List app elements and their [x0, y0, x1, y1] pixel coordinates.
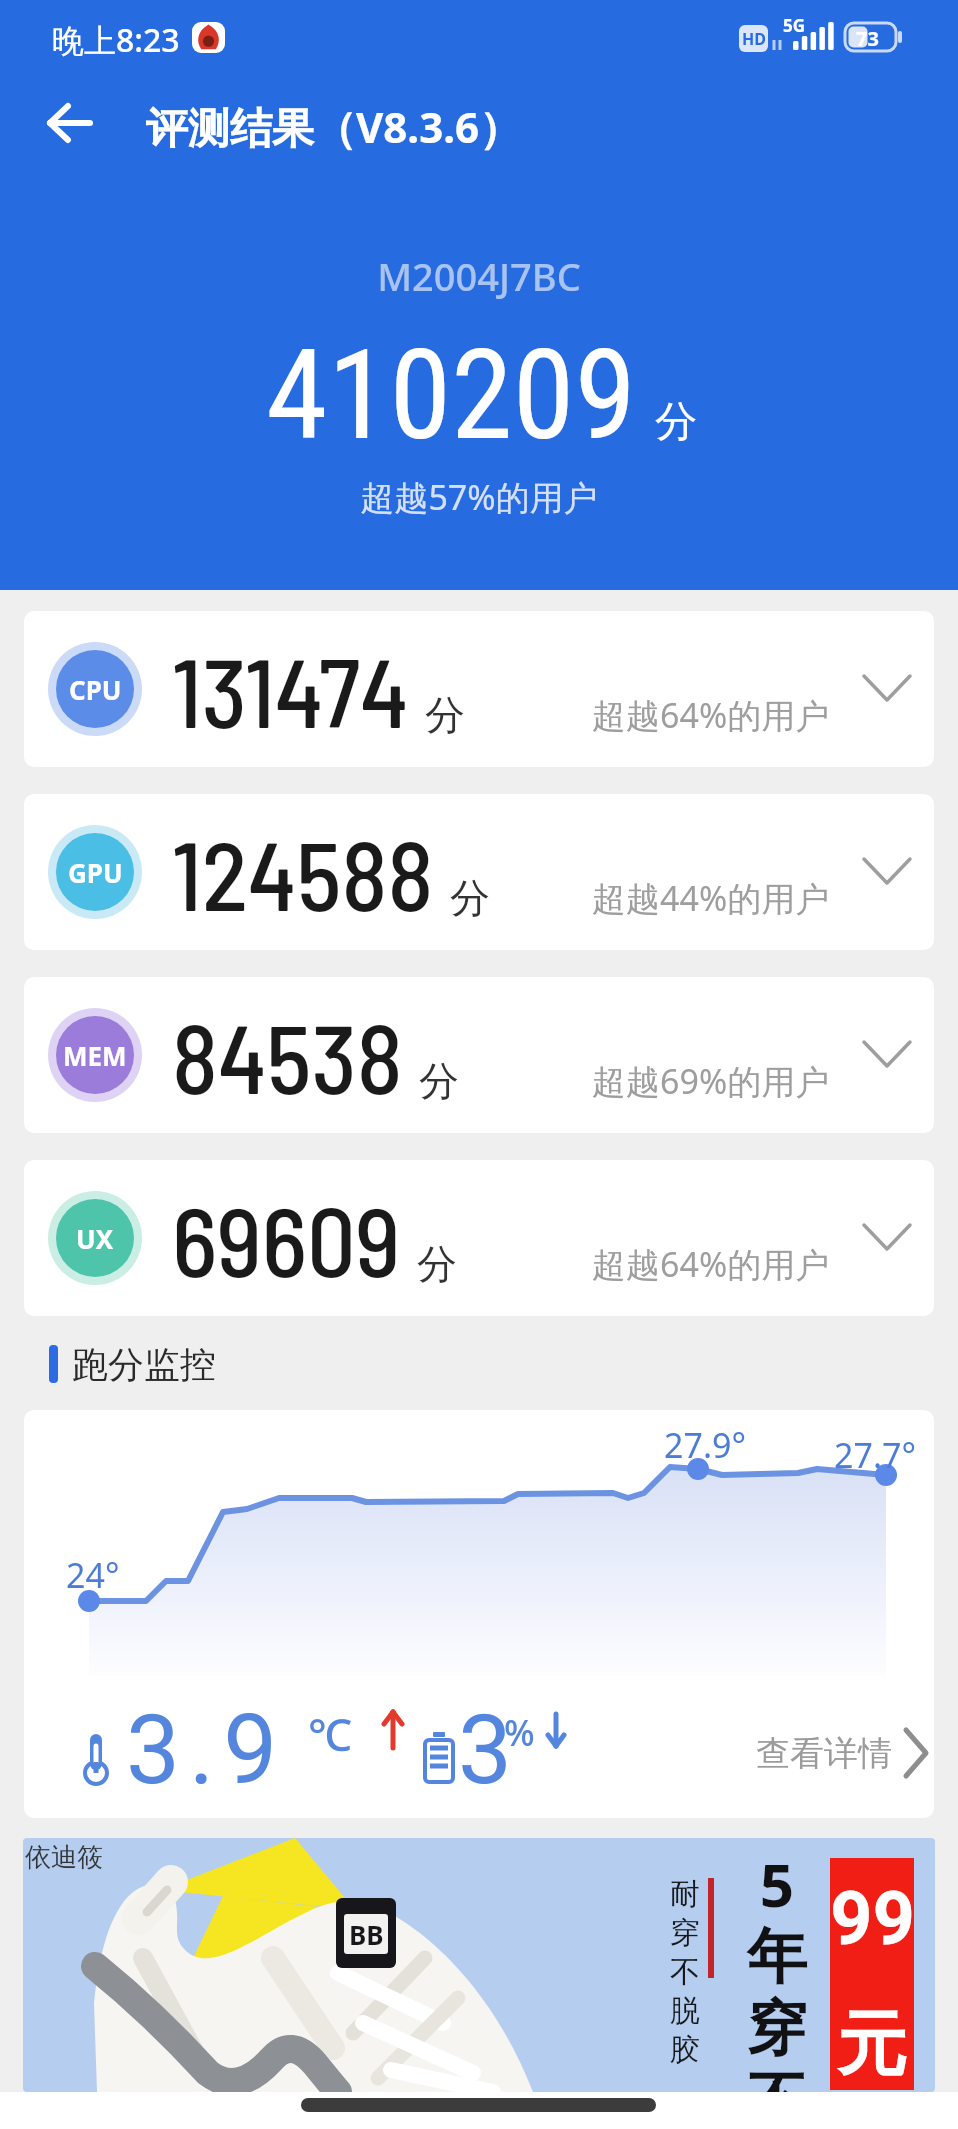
staticText: 73 [856, 25, 879, 52]
staticText: 3 [458, 1694, 512, 1807]
staticText: 超越57%的用户 [0, 474, 958, 520]
staticText: 超越44%的用户 [592, 875, 830, 921]
staticText: UX [76, 1221, 114, 1256]
staticText: HD [742, 28, 766, 50]
staticText: 依迪筱 [25, 1841, 103, 1874]
staticText: 分 [417, 1239, 457, 1289]
staticText: GPU [68, 855, 123, 890]
staticText: ℃ [308, 1704, 352, 1764]
staticText: 分 [419, 1056, 459, 1106]
button[interactable]: 24° [24, 1410, 934, 1818]
staticText: 24° [66, 1552, 120, 1598]
staticText: 99 [830, 1875, 914, 1962]
staticText: MEM [63, 1038, 127, 1073]
staticText: 分 [425, 690, 465, 740]
staticText: BB [349, 1917, 384, 1952]
staticText: 69609 [172, 1181, 401, 1296]
staticText: 410209 [266, 322, 637, 468]
staticText: 元 [830, 2001, 914, 2089]
staticText: 超越64%的用户 [592, 692, 830, 738]
staticText: % [504, 1708, 535, 1757]
button[interactable]: MEM [24, 977, 934, 1133]
staticText: 耐 穿 不 脱 胶 [670, 1875, 700, 2069]
staticText: 5G [783, 14, 806, 37]
staticText: 分 [450, 873, 490, 923]
staticText: M2004J7BC [0, 250, 958, 302]
button[interactable]: 查看详情 [756, 1728, 928, 1778]
staticText: 超越69%的用户 [592, 1058, 830, 1104]
staticText: CPU [69, 672, 122, 707]
staticText: 124588 [172, 815, 434, 930]
button[interactable]: CPU [24, 611, 934, 767]
staticText: 评测结果（V8.3.6） [146, 98, 521, 155]
staticText: 晚上8:23 [52, 18, 180, 62]
button[interactable]: BB [23, 1838, 935, 2092]
staticText: 131474 [172, 632, 409, 747]
staticText: 3.9 [126, 1694, 287, 1807]
staticText: 5 年 穿 不 [745, 1843, 809, 2092]
button[interactable] [30, 92, 110, 154]
button[interactable]: GPU [24, 794, 934, 950]
staticText: 27.9° [664, 1422, 747, 1468]
staticText: 跑分监控 [72, 1342, 216, 1387]
staticText: 27.7° [834, 1432, 917, 1478]
button[interactable]: UX [24, 1160, 934, 1316]
staticText: 分 [655, 396, 697, 449]
staticText: 查看详情 [756, 1732, 892, 1775]
staticText: 超越64%的用户 [592, 1241, 830, 1287]
staticText: 84538 [172, 998, 403, 1113]
